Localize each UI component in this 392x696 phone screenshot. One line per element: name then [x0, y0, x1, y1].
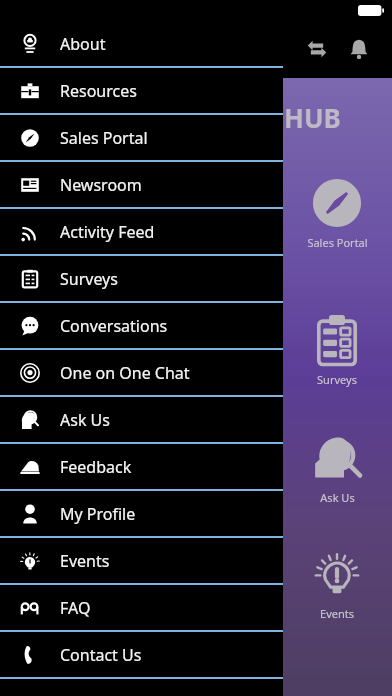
staticText: Conversations	[60, 315, 168, 337]
staticText: My Profile	[60, 503, 136, 525]
button[interactable]: Newsroom	[0, 162, 283, 207]
button[interactable]: Notifications	[338, 28, 380, 70]
staticText: Events	[320, 606, 354, 621]
button[interactable]: Activity Feed	[0, 209, 283, 254]
button[interactable]: Conversations	[0, 303, 283, 348]
button[interactable]: One on One Chat	[0, 350, 283, 395]
button[interactable]: About	[0, 21, 283, 66]
staticText: Resources	[60, 80, 137, 102]
staticText: Feedback	[60, 456, 132, 478]
button[interactable]: Surveys	[282, 312, 392, 387]
staticText: Surveys	[317, 372, 357, 387]
staticText: About	[60, 33, 106, 55]
button[interactable]: Resources	[0, 68, 283, 113]
staticText: FAQ	[60, 597, 91, 619]
staticText: One on One Chat	[60, 362, 190, 384]
button[interactable]: Ask Us	[0, 397, 283, 442]
staticText: Activity Feed	[60, 221, 155, 243]
button[interactable]: Sales Portal	[282, 175, 392, 250]
button[interactable]: Events	[282, 546, 392, 621]
staticText: Surveys	[60, 268, 118, 290]
staticText: HUB	[284, 100, 341, 135]
button[interactable]: Events	[0, 538, 283, 583]
staticText: Newsroom	[60, 174, 142, 196]
button[interactable]: Sales Portal	[0, 115, 283, 160]
button[interactable]: FAQ	[0, 585, 283, 630]
button[interactable]: Ask Us	[282, 430, 392, 505]
staticText: Sales Portal	[307, 235, 368, 250]
staticText: Ask Us	[320, 490, 355, 505]
staticText: Contact Us	[60, 644, 142, 666]
button[interactable]: Contact Us	[0, 632, 283, 677]
button[interactable]: Surveys	[0, 256, 283, 301]
staticText: Events	[60, 550, 110, 572]
button[interactable]: Feedback	[0, 444, 283, 489]
staticText: Ask Us	[60, 409, 110, 431]
button[interactable]: Sync	[296, 28, 338, 70]
button[interactable]: My Profile	[0, 491, 283, 536]
staticText: Sales Portal	[60, 127, 148, 149]
